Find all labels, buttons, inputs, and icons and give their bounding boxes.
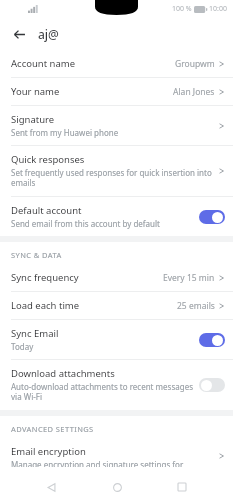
button[interactable]: Download attachments [0, 360, 233, 410]
staticText: Default account [11, 204, 82, 217]
staticText: Every 15 min [163, 272, 215, 284]
staticText: Today [11, 341, 34, 352]
button[interactable]: Default account [0, 197, 233, 236]
staticText: aj@ [38, 26, 59, 42]
staticText: Download attachments [11, 367, 115, 380]
button[interactable]: Home [102, 474, 132, 500]
staticText: Sync frequency [11, 271, 79, 284]
button[interactable]: Load each time [0, 292, 233, 319]
staticText: Alan Jones [173, 86, 215, 98]
button[interactable]: Recent apps [167, 474, 197, 500]
button[interactable]: Sync frequency [0, 264, 233, 291]
button[interactable]: Email encryption [0, 438, 233, 474]
staticText: Email encryption [11, 445, 86, 458]
staticText: Sync Email [11, 327, 59, 340]
staticText: SYNC & DATA [11, 250, 62, 260]
staticText: Account name [11, 57, 76, 70]
staticText: Manage encryption and signature settings… [11, 459, 184, 467]
staticText: Quick responses [11, 153, 85, 166]
staticText: Signature [11, 113, 55, 126]
staticText: Your name [11, 85, 60, 98]
staticText: ADVANCED SETTINGS [11, 424, 94, 434]
staticText: 10:00 [209, 4, 227, 14]
staticText: Load each time [11, 299, 80, 312]
button[interactable]: Your name [0, 78, 233, 105]
button[interactable]: Default account [199, 210, 225, 224]
staticText: Sent from my Huawei phone [11, 127, 119, 138]
staticText: Auto-download attachments to recent mess… [11, 381, 199, 403]
staticText: Set frequently used responses for quick … [11, 167, 218, 189]
staticText: 25 emails [177, 300, 215, 312]
staticText: Send email from this account by default [11, 218, 160, 229]
staticText: 100 % [172, 4, 192, 14]
button[interactable]: Sync Email [199, 333, 225, 347]
button[interactable]: Download attachments [199, 378, 225, 392]
staticText: Groupwm [175, 58, 215, 70]
button[interactable]: Account name [0, 50, 233, 77]
button[interactable]: Sync Email [0, 320, 233, 359]
button[interactable]: Back [8, 23, 30, 45]
button[interactable]: Back [36, 474, 66, 500]
button[interactable]: Quick responses [0, 146, 233, 196]
button[interactable]: Signature [0, 106, 233, 145]
